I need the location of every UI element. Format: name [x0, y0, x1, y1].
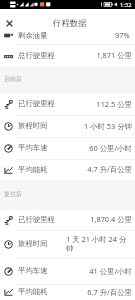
staticText: 已行驶里程 [18, 99, 55, 108]
staticText: 总行驶里程 [18, 51, 55, 60]
staticText: 平均能耗 [18, 287, 48, 296]
staticText: 4.7 升/百公里 [82, 164, 132, 174]
staticText: 复位后 [4, 190, 22, 197]
staticText: 97% [115, 30, 130, 40]
staticText: 1:32 [120, 1, 132, 9]
button[interactable]: 已行驶里程 [0, 210, 135, 230]
staticText: 平均能耗 [18, 165, 48, 174]
staticText: 60 公里/小时 [82, 143, 132, 153]
staticText: 平均车速 [18, 143, 48, 152]
staticText: 112.5 公里 [82, 99, 132, 109]
button[interactable]: 已行驶里程 [0, 94, 135, 115]
staticText: 1,870.4 公里 [82, 214, 132, 224]
staticText: 启动后 [4, 75, 22, 82]
button[interactable]: 总行驶里程 [0, 45, 135, 67]
button[interactable]: 剩余油量 [0, 28, 135, 44]
staticText: 1 天 21 小时 24 分钟 [66, 234, 132, 254]
button[interactable]: 平均车速 [0, 138, 135, 159]
staticText: 行程数据 [53, 18, 87, 29]
button[interactable]: 平均能耗 [0, 160, 135, 180]
staticText: 平均车速 [18, 266, 48, 275]
staticText: 1,871 公里 [82, 50, 132, 60]
staticText: 已行驶里程 [18, 215, 55, 224]
staticText: 旅程时间 [18, 239, 48, 248]
staticText: 剩余油量 [18, 31, 48, 40]
button[interactable]: 平均能耗 [0, 285, 135, 300]
button[interactable]: 旅程时间 [0, 231, 135, 258]
button[interactable]: 关闭 [1, 15, 18, 32]
button[interactable]: 旅程时间 [0, 116, 135, 137]
button[interactable]: 平均车速 [0, 259, 135, 284]
staticText: 旅程时间 [18, 121, 48, 130]
staticText: 41 公里/小时 [82, 266, 132, 276]
staticText: 1 小时 53 分钟 [82, 121, 132, 131]
staticText: 6.7 升/百公里 [82, 287, 132, 297]
